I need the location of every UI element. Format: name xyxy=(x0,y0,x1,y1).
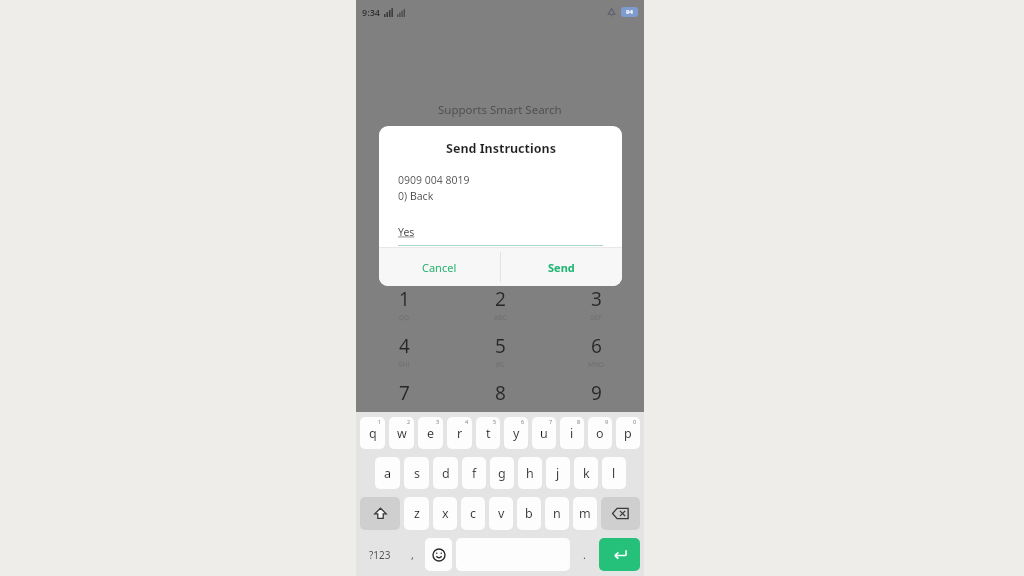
staticText: Supports Smart Search xyxy=(438,102,562,118)
button[interactable]: f xyxy=(462,457,486,489)
button[interactable]: w xyxy=(389,417,414,449)
staticText: 3 xyxy=(436,418,440,425)
button[interactable]: , xyxy=(403,538,421,571)
button[interactable]: z xyxy=(404,497,429,530)
button[interactable]: . xyxy=(574,538,595,571)
button[interactable]: Enter xyxy=(599,538,640,571)
staticText: 3 xyxy=(591,286,602,312)
button[interactable]: 9 xyxy=(548,380,644,427)
staticText: g xyxy=(498,465,506,482)
staticText: x xyxy=(442,505,449,522)
staticText: JKL xyxy=(496,360,506,369)
staticText: 7 xyxy=(549,418,553,425)
staticText: 0 xyxy=(633,418,637,425)
button[interactable]: ?123 xyxy=(360,538,399,571)
button[interactable]: v xyxy=(489,497,513,530)
staticText: f xyxy=(472,465,477,482)
staticText: q xyxy=(369,425,377,442)
staticText: 2 xyxy=(407,418,411,425)
staticText: t xyxy=(486,425,491,442)
button[interactable]: 4 xyxy=(356,333,452,380)
staticText: GHI xyxy=(398,360,410,369)
button[interactable]: i xyxy=(560,417,584,449)
staticText: Cancel xyxy=(422,260,457,275)
button[interactable]: j xyxy=(546,457,570,489)
staticText: u xyxy=(540,425,548,442)
button[interactable]: l xyxy=(602,457,626,489)
staticText: 7 xyxy=(399,380,410,406)
button[interactable]: m xyxy=(573,497,597,530)
button[interactable]: t xyxy=(476,417,500,449)
staticText: 8 xyxy=(495,380,506,406)
staticText: 1 xyxy=(399,286,410,312)
button[interactable]: Send xyxy=(501,248,622,286)
staticText: ?123 xyxy=(369,548,391,562)
button[interactable]: 2 xyxy=(452,286,548,333)
staticText: o xyxy=(596,425,604,442)
staticText: m xyxy=(579,505,591,522)
staticText: 5 xyxy=(495,333,506,359)
button[interactable]: 8 xyxy=(452,380,548,427)
staticText: MNO xyxy=(588,360,604,369)
button[interactable]: 3 xyxy=(548,286,644,333)
button[interactable]: d xyxy=(433,457,458,489)
button[interactable]: 7 xyxy=(356,380,452,427)
staticText: ABC xyxy=(494,313,507,322)
staticText: 5 xyxy=(493,418,497,425)
button[interactable]: o xyxy=(588,417,612,449)
staticText: 1 xyxy=(378,418,382,425)
button[interactable]: Key xyxy=(360,497,400,530)
button[interactable]: 5 xyxy=(452,333,548,380)
staticText: 94 xyxy=(626,8,633,16)
button[interactable]: Emoji xyxy=(425,538,452,571)
staticText: j xyxy=(556,465,560,482)
button[interactable]: q xyxy=(360,417,385,449)
staticText: 2 xyxy=(495,286,506,312)
staticText: r xyxy=(457,425,463,442)
staticText: 8 xyxy=(577,418,581,425)
button[interactable]: n xyxy=(545,497,569,530)
button[interactable]: y xyxy=(504,417,528,449)
staticText: 9 xyxy=(591,380,602,406)
staticText: DEF xyxy=(590,313,602,322)
button[interactable]: Cancel xyxy=(379,248,500,286)
staticText: Send Instructions xyxy=(446,140,556,157)
staticText: e xyxy=(427,425,435,442)
staticText: z xyxy=(414,505,420,522)
staticText: 9:34 xyxy=(362,6,380,18)
staticText: v xyxy=(498,505,505,522)
staticText: , xyxy=(411,547,414,562)
button[interactable]: 1 xyxy=(356,286,452,333)
button[interactable]: b xyxy=(517,497,541,530)
button[interactable]: c xyxy=(461,497,485,530)
staticText: b xyxy=(525,505,533,522)
staticText: i xyxy=(570,425,574,442)
staticText: 0) Back xyxy=(398,189,434,203)
button[interactable]: Key xyxy=(601,497,640,530)
staticText: p xyxy=(624,425,632,442)
button[interactable]: k xyxy=(574,457,598,489)
button[interactable]: 6 xyxy=(548,333,644,380)
staticText: d xyxy=(442,465,450,482)
button[interactable]: x xyxy=(433,497,457,530)
staticText: n xyxy=(553,505,561,522)
staticText: h xyxy=(526,465,534,482)
staticText: a xyxy=(384,465,392,482)
button[interactable]: g xyxy=(490,457,514,489)
staticText: y xyxy=(513,425,520,442)
staticText: QO xyxy=(399,313,410,322)
button[interactable]: u xyxy=(532,417,556,449)
staticText: . xyxy=(583,547,586,562)
button[interactable]: e xyxy=(418,417,443,449)
staticText: s xyxy=(414,465,420,482)
button[interactable]: a xyxy=(375,457,400,489)
button[interactable]: s xyxy=(404,457,429,489)
staticText: 4 xyxy=(465,418,469,425)
staticText: Send xyxy=(548,260,575,275)
button[interactable]: h xyxy=(518,457,542,489)
button[interactable]: p xyxy=(616,417,640,449)
staticText: 6 xyxy=(591,333,602,359)
button[interactable]: r xyxy=(447,417,472,449)
staticText: c xyxy=(470,505,477,522)
